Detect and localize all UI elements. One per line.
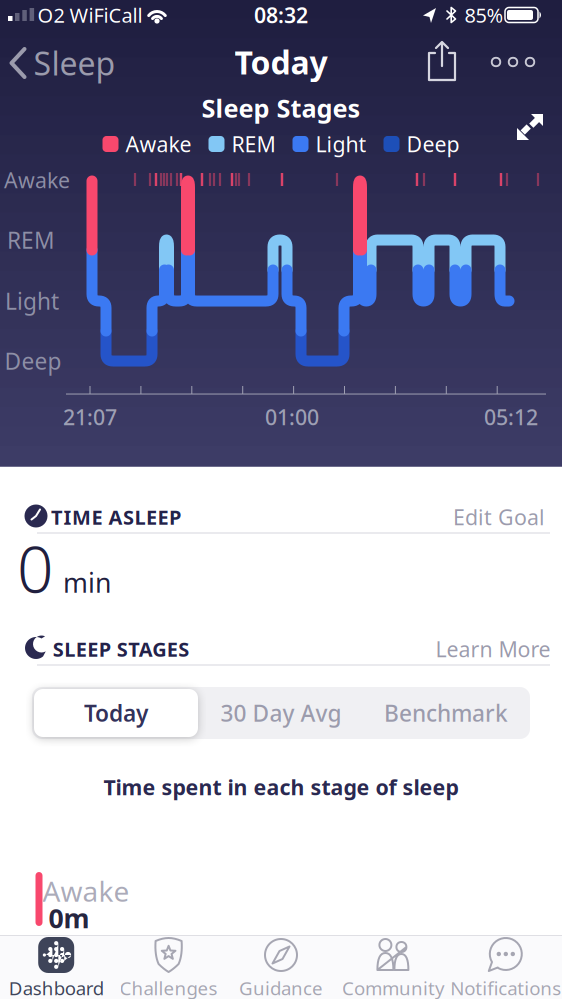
staticText: Awake: [125, 130, 191, 158]
button[interactable]: Guidance: [225, 935, 337, 999]
button[interactable]: Today: [34, 689, 198, 737]
staticText: 0: [17, 525, 54, 610]
staticText: TIME ASLEEP: [51, 504, 181, 530]
staticText: Notifications: [450, 976, 561, 999]
staticText: 85%: [464, 2, 503, 28]
button[interactable]: Challenges: [113, 935, 225, 999]
staticText: Light: [315, 130, 366, 158]
button[interactable]: Benchmark: [364, 689, 528, 737]
button[interactable]: Expand chart: [516, 113, 544, 141]
staticText: min: [63, 565, 111, 600]
staticText: 0m: [48, 900, 89, 936]
button[interactable]: 30 Day Avg: [199, 689, 363, 737]
staticText: SLEEP STAGES: [53, 636, 189, 662]
staticText: Today: [234, 41, 327, 83]
staticText: Community: [342, 976, 445, 999]
staticText: Guidance: [239, 976, 323, 999]
button[interactable]: Notifications: [450, 935, 562, 999]
staticText: Sleep: [33, 42, 115, 84]
button[interactable]: Dashboard: [0, 935, 112, 999]
staticText: Time spent in each stage of sleep: [103, 773, 458, 801]
button[interactable]: More: [492, 58, 534, 66]
staticText: 05:12: [484, 403, 538, 431]
staticText: 21:07: [63, 403, 117, 431]
staticText: Deep: [406, 130, 459, 158]
staticText: Deep: [4, 346, 61, 376]
staticText: REM: [231, 130, 275, 158]
button[interactable]: Share: [427, 40, 457, 82]
staticText: Challenges: [120, 976, 218, 999]
staticText: Edit Goal: [453, 503, 545, 531]
button[interactable]: Learn More: [435, 635, 550, 663]
staticText: Today: [84, 698, 148, 728]
staticText: 01:00: [265, 403, 319, 431]
staticText: O2 WiFiCall: [37, 2, 142, 28]
staticText: Sleep Stages: [201, 91, 360, 125]
staticText: Benchmark: [384, 698, 508, 728]
button[interactable]: Sleep: [8, 42, 115, 84]
staticText: Awake: [4, 166, 70, 194]
staticText: 30 Day Avg: [220, 698, 341, 728]
staticText: Light: [5, 286, 59, 316]
staticText: Learn More: [435, 635, 550, 663]
staticText: 08:32: [254, 1, 308, 29]
staticText: REM: [7, 225, 55, 255]
button[interactable]: Edit Goal: [453, 503, 545, 531]
button[interactable]: Community: [337, 935, 449, 999]
staticText: Dashboard: [9, 976, 104, 999]
staticText: Awake: [42, 872, 129, 910]
